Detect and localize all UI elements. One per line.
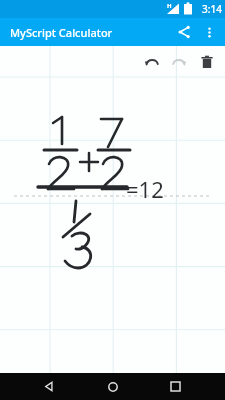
button[interactable]: Back bbox=[36, 373, 63, 400]
button[interactable]: More options bbox=[197, 20, 221, 44]
staticText: MyScript Calculator bbox=[10, 25, 113, 40]
button[interactable]: Home bbox=[99, 373, 126, 400]
staticText: H bbox=[167, 2, 172, 10]
button[interactable]: Share bbox=[171, 19, 197, 45]
button[interactable]: Redo bbox=[165, 48, 193, 76]
button[interactable]: Undo bbox=[137, 48, 165, 76]
staticText: =12 bbox=[126, 174, 164, 204]
button[interactable]: Recent apps bbox=[162, 373, 189, 400]
staticText: 3:14 bbox=[202, 2, 222, 16]
button[interactable]: Delete bbox=[193, 48, 221, 76]
